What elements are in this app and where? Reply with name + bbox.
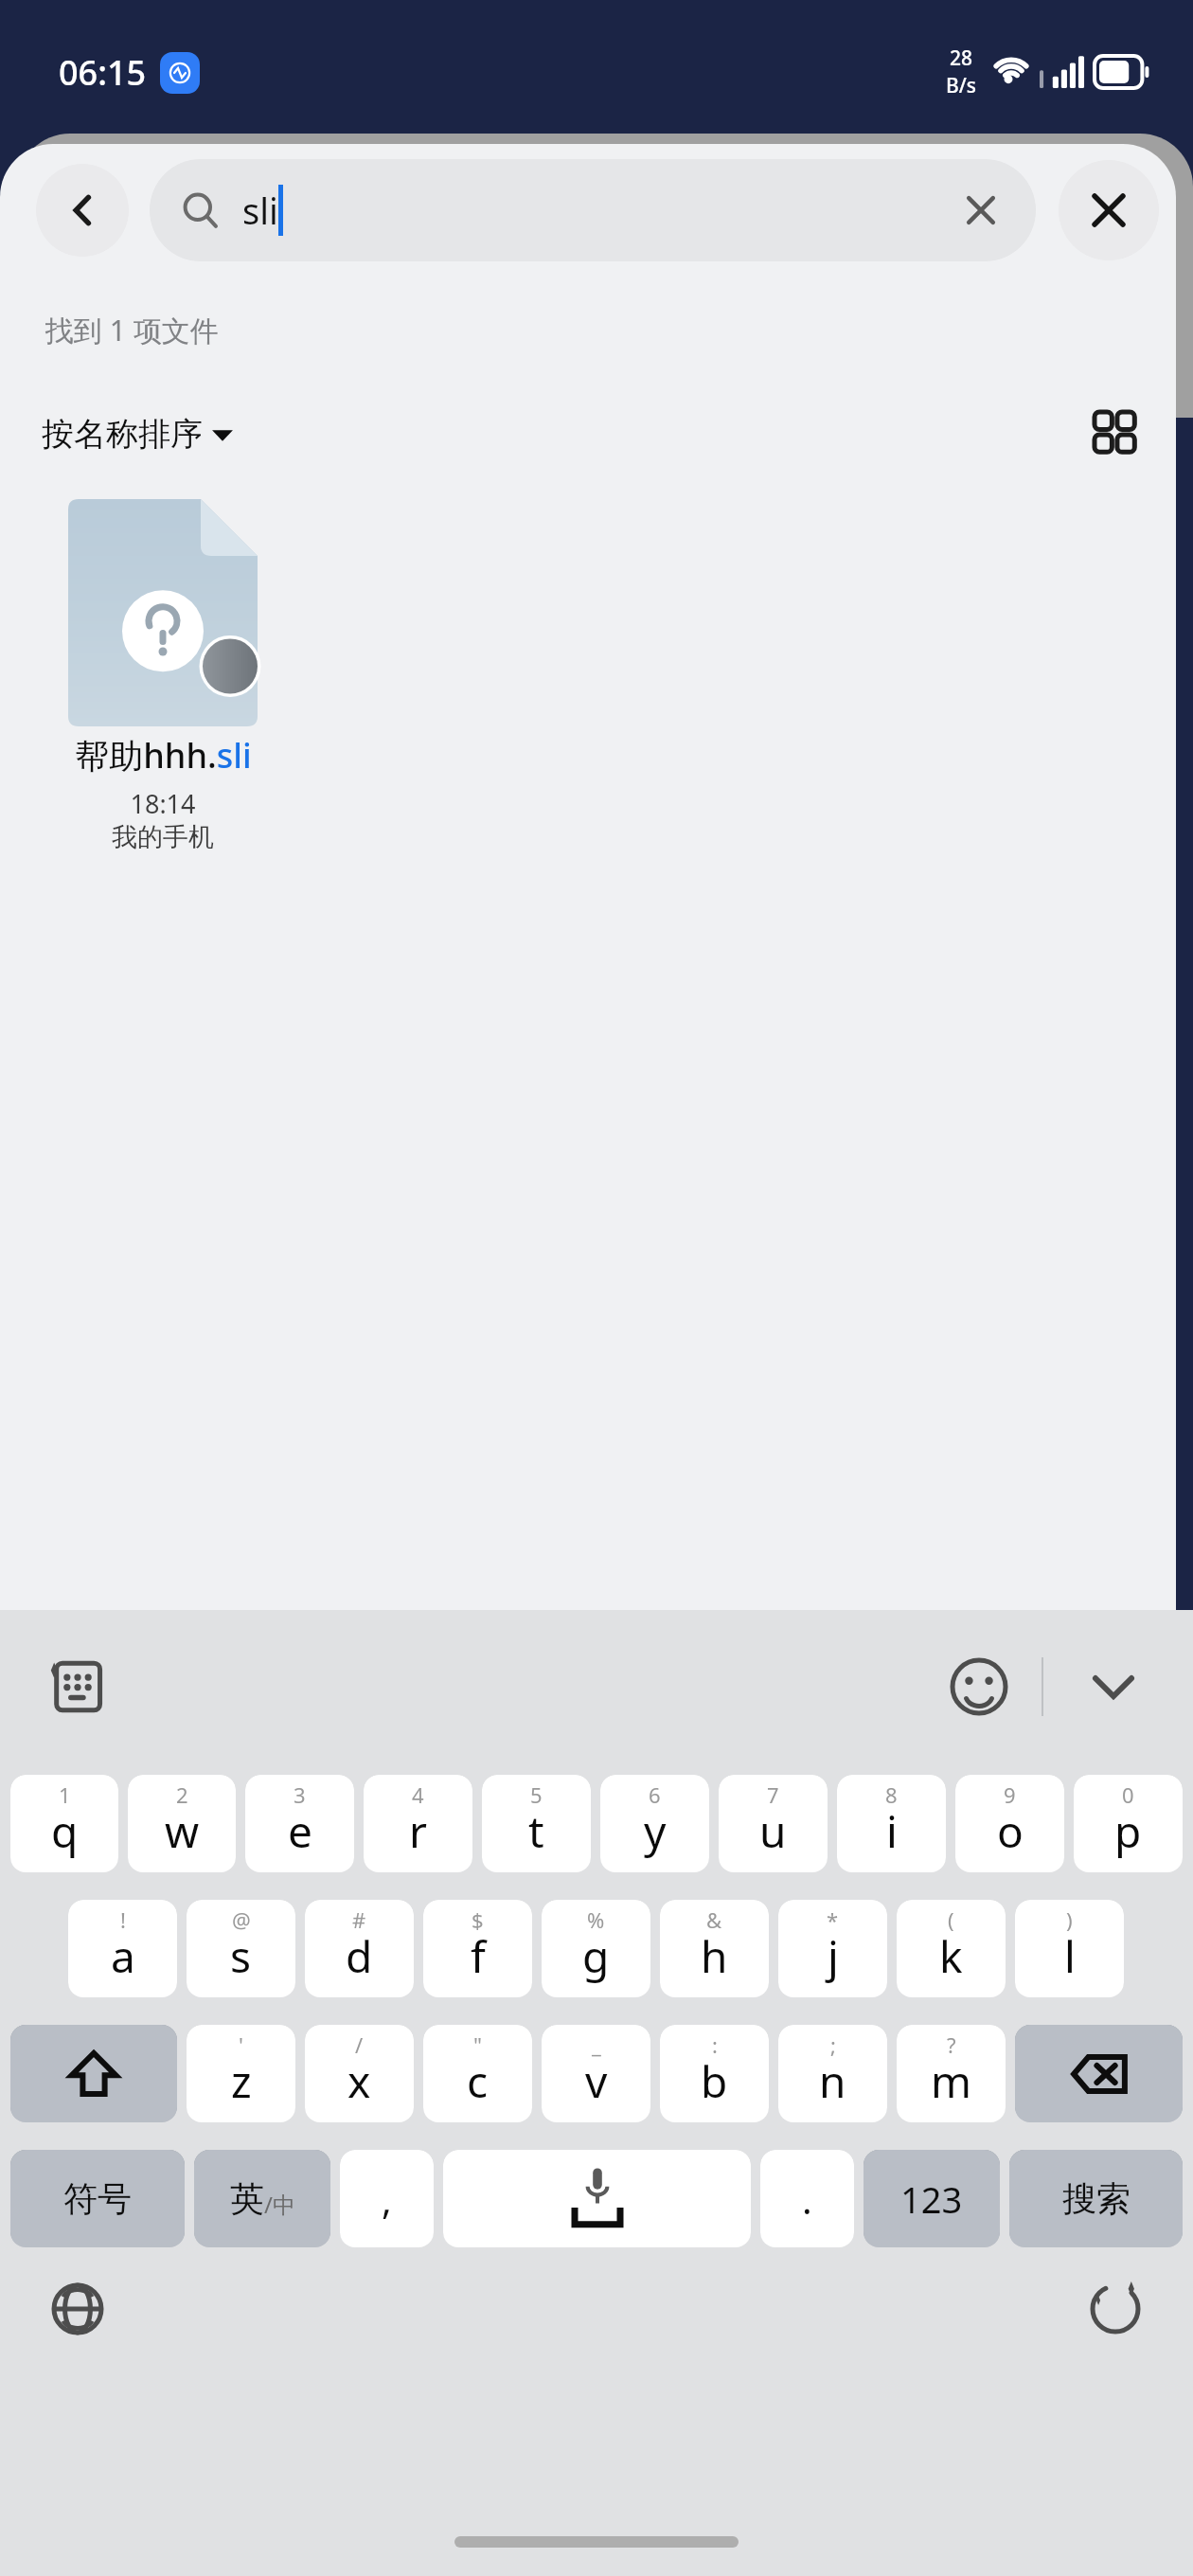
button[interactable]: 搜索 [1009, 2150, 1183, 2247]
staticText: 符号 [63, 2177, 132, 2220]
button[interactable]: 4 [364, 1775, 472, 1872]
button[interactable]: ) [1015, 1900, 1124, 1997]
staticText: " [473, 2030, 482, 2059]
staticText: : [712, 2030, 718, 2059]
button[interactable]: 符号 [10, 2150, 185, 2247]
button[interactable]: 按名称排序 [42, 414, 235, 455]
button[interactable]: Close search [1059, 160, 1159, 260]
staticText: 18:14 [130, 786, 196, 821]
button[interactable]: Emoji [935, 1643, 1023, 1730]
button[interactable]: 123 [864, 2150, 1000, 2247]
staticText: p [1114, 1801, 1142, 1861]
staticText: k [939, 1926, 963, 1986]
staticText: 7 [767, 1780, 779, 1809]
button[interactable]: ' [187, 2025, 295, 2122]
staticText: g [582, 1926, 610, 1986]
button[interactable]: 1 [10, 1775, 118, 1872]
staticText: o [997, 1801, 1024, 1861]
button[interactable]: Change language [38, 2269, 117, 2349]
button[interactable]: ; [778, 2025, 887, 2122]
button[interactable]: Hide keyboard [1070, 1643, 1157, 1730]
button[interactable]: Space [443, 2150, 751, 2247]
button[interactable]: , [340, 2150, 434, 2247]
staticText: i [886, 1801, 898, 1861]
staticText: 帮助hhh.sli [75, 732, 252, 778]
button[interactable]: $ [423, 1900, 532, 1997]
staticText: /中 [264, 2189, 295, 2220]
staticText: 8 [885, 1780, 898, 1809]
staticText: ; [830, 2030, 836, 2059]
staticText: ) [1066, 1905, 1073, 1934]
staticText: d [346, 1926, 373, 1986]
staticText: s [230, 1926, 252, 1986]
staticText: 我的手机 [112, 821, 214, 853]
button[interactable]: Backspace [1015, 2025, 1183, 2122]
staticText: $ [472, 1905, 484, 1934]
staticText: ? [947, 2030, 956, 2059]
staticText: l [1064, 1926, 1076, 1986]
staticText: 6 [649, 1780, 661, 1809]
button[interactable]: ( [897, 1900, 1006, 1997]
staticText: # [352, 1905, 366, 1934]
button[interactable]: 0 [1074, 1775, 1183, 1872]
button[interactable]: 7 [719, 1775, 828, 1872]
button[interactable]: 2 [128, 1775, 236, 1872]
staticText: ' [239, 2030, 243, 2059]
staticText: / [355, 2030, 364, 2059]
button[interactable]: * [778, 1900, 887, 1997]
staticText: 5 [530, 1780, 543, 1809]
button[interactable]: Keyboard settings [36, 1645, 119, 1728]
button[interactable]: 3 [245, 1775, 354, 1872]
button[interactable]: # [305, 1900, 414, 1997]
button[interactable]: Clear text [943, 172, 1019, 248]
staticText: 06:15 [59, 49, 147, 96]
button[interactable]: & [660, 1900, 769, 1997]
staticText: B/s [946, 72, 977, 99]
staticText: 123 [900, 2174, 963, 2224]
button[interactable]: Back [36, 164, 129, 257]
button[interactable]: : [660, 2025, 769, 2122]
button[interactable]: _ [542, 2025, 650, 2122]
button[interactable]: @ [187, 1900, 295, 1997]
staticText: h [701, 1926, 728, 1986]
button[interactable]: sli [150, 159, 1036, 261]
staticText: z [231, 2051, 252, 2111]
staticText: c [467, 2051, 489, 2111]
staticText: 1 [59, 1780, 71, 1809]
staticText: 3 [294, 1780, 306, 1809]
staticText: 9 [1004, 1780, 1016, 1809]
button[interactable]: ? [897, 2025, 1006, 2122]
button[interactable]: 5 [482, 1775, 591, 1872]
staticText: u [759, 1801, 787, 1861]
staticText: x [347, 2051, 371, 2111]
staticText: * [827, 1905, 839, 1934]
staticText: 28 [950, 45, 973, 72]
button[interactable]: " [423, 2025, 532, 2122]
button[interactable]: 6 [600, 1775, 709, 1872]
staticText: % [587, 1905, 605, 1934]
staticText: j [828, 1926, 839, 1986]
staticText: 找到 1 项文件 [45, 311, 219, 349]
button[interactable]: Shift [10, 2025, 177, 2122]
button[interactable]: 8 [837, 1775, 946, 1872]
staticText: ( [948, 1905, 954, 1934]
button[interactable]: Grid view [1081, 399, 1151, 469]
button[interactable]: . [760, 2150, 854, 2247]
staticText: & [706, 1905, 722, 1934]
button[interactable]: AI assist [1076, 2269, 1155, 2349]
staticText: 英 [230, 2177, 264, 2220]
staticText: m [931, 2051, 972, 2111]
staticText: 搜索 [1062, 2177, 1131, 2220]
button[interactable]: 帮助hhh.sli [23, 499, 303, 853]
staticText: ! [120, 1905, 126, 1934]
button[interactable]: 9 [955, 1775, 1064, 1872]
staticText: r [409, 1801, 427, 1861]
staticText: 0 [1122, 1780, 1134, 1809]
button[interactable]: / [305, 2025, 414, 2122]
button[interactable]: ! [68, 1900, 177, 1997]
staticText: a [111, 1926, 135, 1986]
button[interactable]: 英/中 [194, 2150, 330, 2247]
staticText: _ [592, 2030, 601, 2059]
button[interactable]: % [542, 1900, 650, 1997]
staticText: sli [242, 186, 278, 235]
